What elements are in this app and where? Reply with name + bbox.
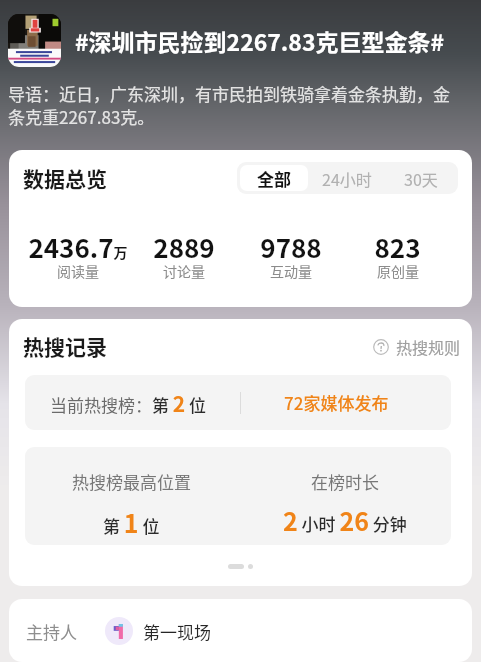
staticText: 9788 (260, 228, 322, 266)
staticText: 互动量 (270, 261, 312, 281)
staticText: 2889 (153, 228, 215, 266)
staticText: 24小时 (322, 167, 372, 190)
staticText: 823 (374, 228, 421, 266)
button[interactable]: 话题封面 (8, 14, 61, 67)
button[interactable]: 主持人 (26, 617, 472, 645)
staticText: 在榜时长 (311, 469, 379, 494)
staticText: #深圳市民捡到2267.83克巨型金条# (75, 24, 445, 57)
staticText: 第一现场 (143, 619, 211, 644)
staticText: 全部 (257, 166, 291, 191)
staticText: 2 小时 26 分钟 (283, 502, 407, 538)
staticText: 当前热搜榜：第 2 位 (50, 388, 207, 418)
button[interactable]: 热搜规则 (373, 335, 461, 358)
staticText: 72家媒体发布 (284, 390, 389, 415)
staticText: 讨论量 (163, 261, 205, 281)
staticText: 30天 (404, 167, 438, 190)
staticText: 导语：近日，广东深圳，有市民拍到铁骑拿着金条执勤，金条克重2267.83克。 (8, 81, 459, 129)
staticText: 2436.7万 (28, 228, 128, 266)
staticText: 主持人 (26, 619, 77, 644)
staticText: 数据总览 (23, 163, 107, 193)
staticText: 原创量 (377, 261, 419, 281)
staticText: 热搜规则 (396, 335, 461, 358)
button[interactable]: 30天 (386, 165, 455, 191)
staticText: 第 1 位 (103, 504, 160, 540)
staticText: 热搜榜最高位置 (72, 469, 191, 494)
button[interactable]: 全部 (240, 165, 308, 191)
staticText: 热搜记录 (23, 331, 107, 361)
staticText: 阅读量 (57, 261, 99, 281)
button[interactable]: 24小时 (308, 165, 386, 191)
